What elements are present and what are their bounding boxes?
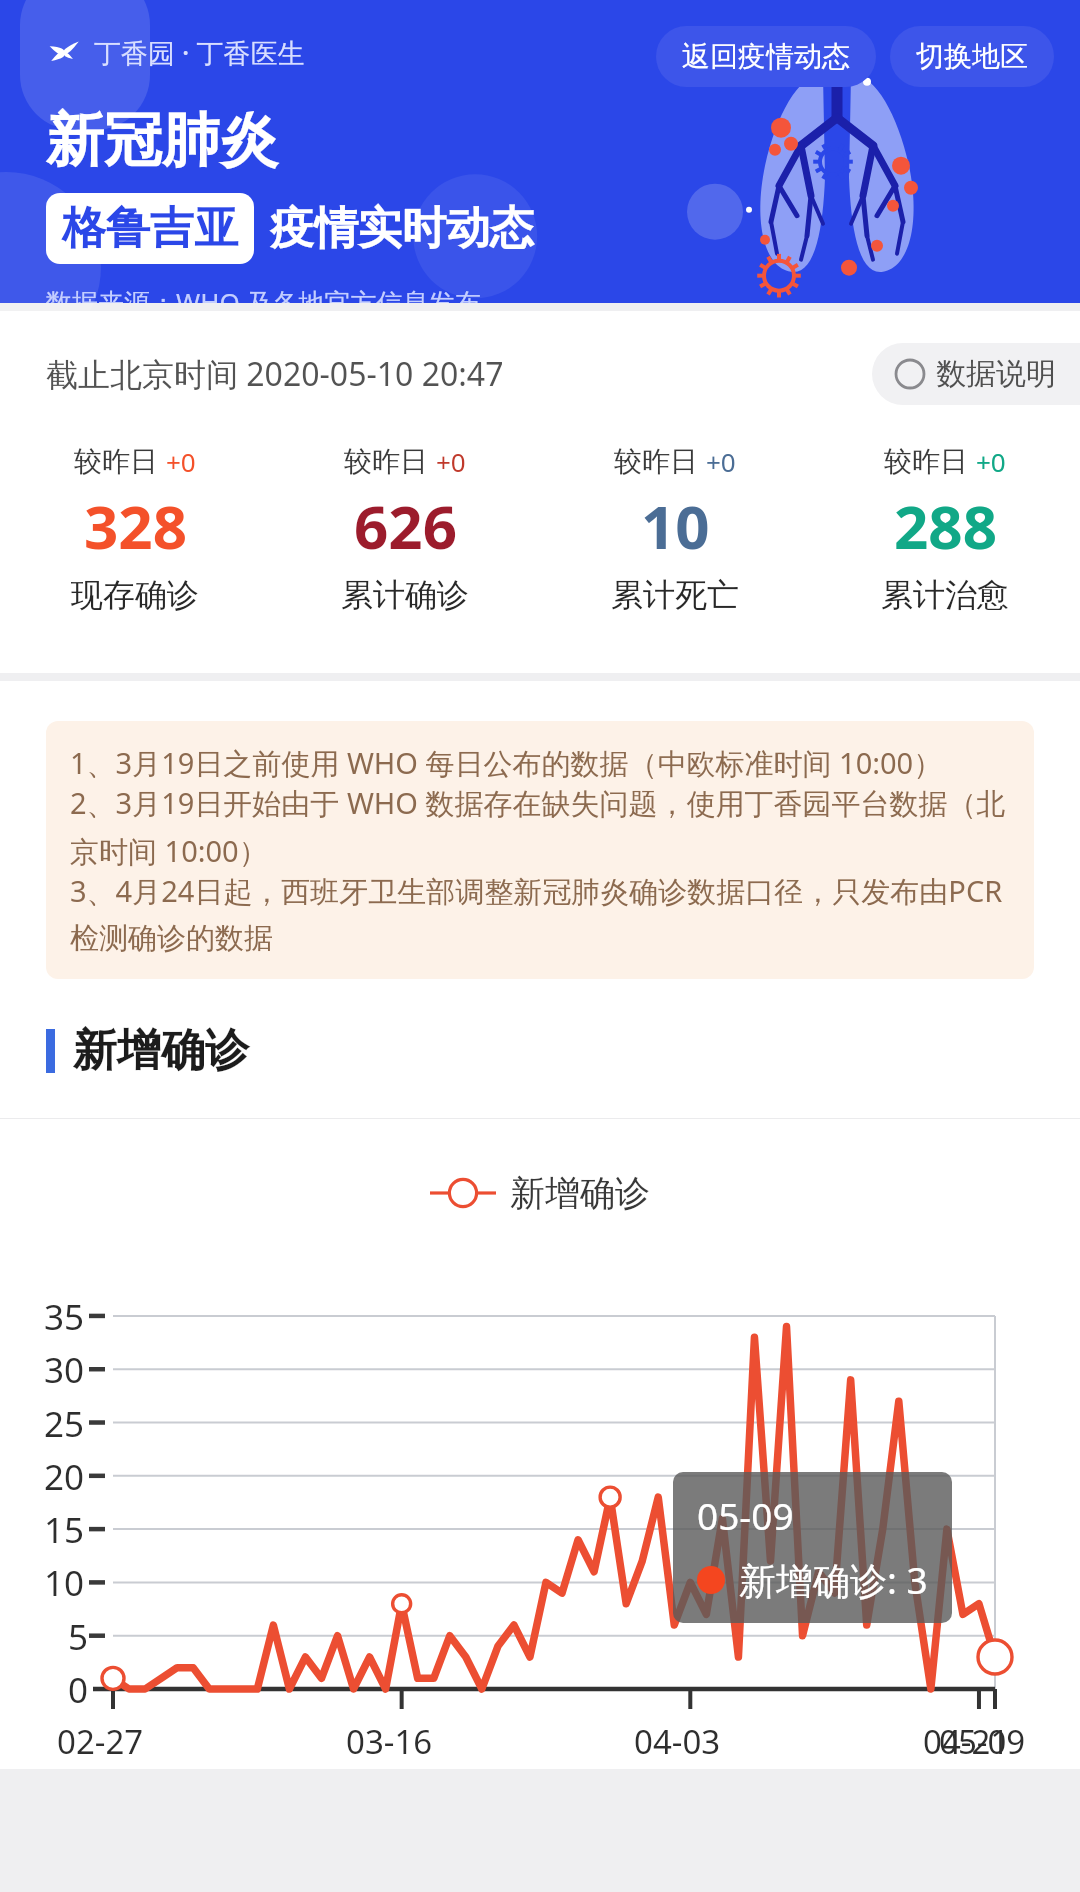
staticText: 04-03 xyxy=(634,1719,721,1764)
staticText: 626 xyxy=(354,485,457,567)
staticText: 20 xyxy=(44,1453,85,1501)
button[interactable]: 数据说明 xyxy=(872,343,1080,405)
staticText: 数据说明 xyxy=(936,355,1056,393)
staticText: +0 xyxy=(976,444,1006,479)
staticText: 02-27 xyxy=(57,1719,144,1764)
staticText: +0 xyxy=(166,444,196,479)
staticText: 10 xyxy=(44,1559,85,1607)
staticText: 10 xyxy=(641,485,710,567)
staticText: 新冠肺炎 xyxy=(46,104,278,177)
staticText: 1、3月19日之前使用 WHO 每日公布的数据（中欧标准时间 10:00） xyxy=(70,743,943,783)
staticText: 05-09 xyxy=(939,1719,1026,1764)
staticText: 30 xyxy=(44,1346,85,1394)
staticText: 03-16 xyxy=(346,1719,433,1764)
staticText: 截止北京时间 2020-05-10 20:47 xyxy=(46,352,504,396)
staticText: 较昨日 xyxy=(884,441,976,479)
staticText: 04-21 xyxy=(923,1719,1010,1764)
button[interactable]: 较昨日 xyxy=(540,441,810,615)
staticText: 累计死亡 xyxy=(611,575,739,615)
button[interactable]: 切换地区 xyxy=(890,26,1054,87)
staticText: 现存确诊 xyxy=(71,575,199,615)
staticText: +0 xyxy=(706,444,736,479)
staticText: 35 xyxy=(44,1293,85,1341)
staticText: +0 xyxy=(436,444,466,479)
staticText: 切换地区 xyxy=(916,39,1028,74)
button[interactable]: 返回疫情动态 xyxy=(656,26,876,87)
button[interactable]: 较昨日 xyxy=(0,441,270,615)
staticText: 较昨日 xyxy=(74,441,166,479)
staticText: 疫情实时动态 xyxy=(270,201,534,256)
staticText: 较昨日 xyxy=(344,441,436,479)
staticText: 5 xyxy=(68,1613,89,1661)
staticText: 0 xyxy=(68,1666,89,1714)
staticText: 格鲁吉亚 xyxy=(62,201,238,256)
staticText: 较昨日 xyxy=(614,441,706,479)
staticText: 2、3月19日开始由于 WHO 数据存在缺失问题，使用丁香园平台数据（北京时间 … xyxy=(70,783,1010,871)
staticText: 新增确诊: 3 xyxy=(739,1554,928,1605)
button[interactable]: 较昨日 xyxy=(270,441,540,615)
staticText: 新增确诊 xyxy=(73,1023,249,1078)
other: 数据说明 xyxy=(894,358,926,390)
staticText: 返回疫情动态 xyxy=(682,39,850,74)
staticText: 15 xyxy=(44,1506,85,1554)
staticText: 328 xyxy=(84,485,187,567)
staticText: 数据来源：WHO 及各地官方信息发布 xyxy=(46,284,481,303)
staticText: 05-09 xyxy=(697,1490,794,1540)
staticText: 25 xyxy=(44,1400,85,1448)
staticText: 累计治愈 xyxy=(881,575,1009,615)
staticText: 3、4月24日起，西班牙卫生部调整新冠肺炎确诊数据口径，只发布由PCR检测确诊的… xyxy=(70,871,1010,957)
staticText: 新增确诊 xyxy=(510,1171,650,1215)
staticText: 累计确诊 xyxy=(341,575,469,615)
button[interactable]: 较昨日 xyxy=(810,441,1080,615)
staticText: 288 xyxy=(894,485,997,567)
staticText: 丁香园 · 丁香医生 xyxy=(94,34,305,71)
